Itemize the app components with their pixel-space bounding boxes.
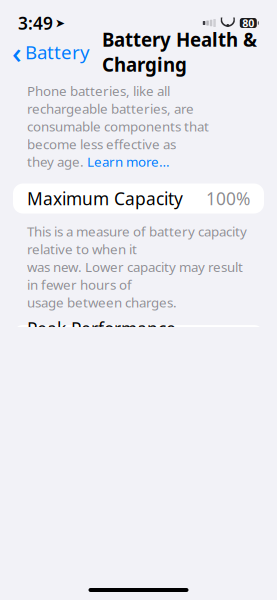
- button[interactable]: ‹: [8, 28, 94, 75]
- staticText: consumable components that become less e…: [27, 117, 209, 153]
- button[interactable]: Learn more…: [87, 153, 170, 170]
- staticText: This is a measure of battery capacity re…: [27, 222, 247, 258]
- staticText: Learn more…: [87, 153, 170, 170]
- staticText: ➤: [55, 16, 65, 30]
- staticText: Battery Health & Charging: [102, 27, 257, 77]
- button[interactable]: Maximum Capacity: [13, 183, 264, 213]
- staticText: they age.: [27, 153, 87, 170]
- staticText: charging routine so it can wait to finis…: [27, 561, 224, 596]
- staticText: Peak Performance Capability: [27, 317, 176, 363]
- staticText: 3:49: [18, 11, 53, 34]
- staticText: ‹: [12, 32, 22, 71]
- staticText: Phone batteries, like all rechargeable b…: [27, 82, 194, 117]
- staticText: usage between charges.: [27, 293, 177, 311]
- staticText: 100%: [206, 187, 250, 210]
- staticText: was new. Lower capacity may result in fe…: [27, 258, 243, 293]
- staticText: Maximum Capacity: [27, 187, 183, 210]
- staticText: 80: [242, 16, 254, 30]
- staticText: Battery: [25, 40, 90, 64]
- button[interactable]: Peak Performance Capability: [13, 325, 264, 355]
